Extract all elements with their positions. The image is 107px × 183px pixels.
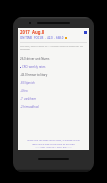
staticText: -8 Eltjanich (20, 81, 35, 85)
button[interactable]: -8 Eltjanich (20, 79, 87, 87)
button[interactable]: Kindly you can open up my topic, a shari… (21, 139, 86, 148)
button[interactable]: 26.0 driver unit Nums (20, 55, 87, 63)
staticText: FOCUS (34, 36, 44, 40)
staticText: -43.0 hmsar to litary (20, 73, 48, 77)
button[interactable]: CRO weekly rates (20, 63, 87, 71)
staticText: - (45, 36, 46, 40)
staticText: -4 feo (20, 89, 28, 93)
staticText: 2017 Aug.8 (20, 29, 45, 35)
staticText: 42.0 (47, 36, 53, 40)
button[interactable]: -4 feo (20, 87, 87, 95)
staticText: - (54, 36, 55, 40)
button[interactable]: ON TIME (20, 36, 87, 40)
button[interactable]: -2 himsadhad (20, 103, 87, 111)
staticText: 668.0 (56, 36, 64, 40)
staticText: CRO weekly rates (22, 65, 46, 69)
staticText: -7 vaslihem (20, 97, 37, 101)
staticText: Click here, input to enter on — Location… (20, 45, 87, 51)
staticText: 26.0 driver unit Nums (20, 57, 50, 61)
button[interactable]: -43.0 hmsar to litary (20, 71, 87, 79)
button[interactable]: -7 vaslihem (20, 95, 87, 103)
staticText: -2 himsadhad (20, 105, 39, 109)
staticText: ON TIME (20, 36, 33, 40)
button[interactable]: 2017 Aug.8 (20, 29, 87, 35)
